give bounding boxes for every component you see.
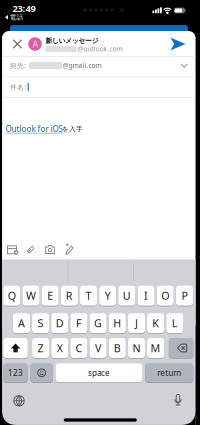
- staticText: I: [144, 289, 148, 303]
- staticText: R: [66, 289, 73, 303]
- staticText: O: [161, 289, 169, 303]
- staticText: Y: [105, 289, 111, 303]
- staticText: 123: [8, 367, 23, 378]
- staticText: G: [94, 316, 102, 330]
- staticText: T: [85, 289, 91, 303]
- staticText: @gmail.com: [62, 61, 101, 70]
- staticText: P: [181, 289, 187, 303]
- staticText: K: [152, 316, 159, 330]
- staticText: 宛先:: [10, 61, 26, 70]
- staticText: B: [114, 341, 121, 355]
- staticText: C: [75, 341, 82, 355]
- staticText: Outlook for iOS: [5, 124, 62, 134]
- staticText: L: [172, 316, 178, 330]
- staticText: を入手: [62, 125, 83, 133]
- staticText: X: [57, 341, 63, 355]
- staticText: M: [151, 341, 161, 355]
- staticText: 件名:: [10, 83, 26, 91]
- staticText: W: [26, 289, 36, 303]
- staticText: V: [95, 341, 101, 355]
- staticText: Q: [8, 289, 16, 303]
- staticText: S: [38, 316, 44, 330]
- staticText: return: [157, 367, 181, 378]
- staticText: 電話: [9, 13, 23, 21]
- staticText: Z: [38, 341, 44, 355]
- staticText: A: [18, 316, 25, 330]
- staticText: F: [76, 316, 82, 330]
- staticText: A: [32, 38, 38, 50]
- staticText: @outlook.com: [77, 45, 122, 53]
- staticText: 新しいメッセージ: [45, 37, 99, 45]
- staticText: H: [113, 316, 121, 330]
- staticText: space: [88, 367, 110, 378]
- staticText: U: [123, 289, 131, 303]
- staticText: D: [56, 316, 64, 330]
- staticText: J: [135, 316, 138, 330]
- staticText: N: [132, 341, 140, 355]
- staticText: 23:49: [12, 2, 35, 15]
- staticText: E: [47, 289, 53, 303]
